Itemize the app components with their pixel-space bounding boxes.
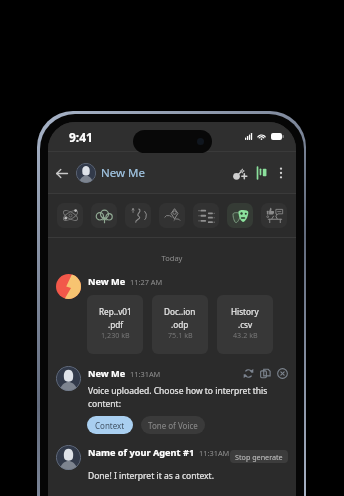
button[interactable]: Context bbox=[87, 416, 133, 434]
staticText: .pdf bbox=[108, 319, 124, 330]
staticText: History bbox=[231, 306, 259, 317]
button[interactable]: Tone of Voice bbox=[141, 416, 205, 434]
staticText: New Me bbox=[101, 165, 145, 181]
button[interactable]: Record bbox=[159, 203, 185, 228]
button[interactable]: More options bbox=[272, 164, 290, 182]
button[interactable]: Transcript bbox=[193, 203, 219, 228]
staticText: 11:31AM bbox=[199, 448, 230, 458]
button[interactable]: New Me bbox=[76, 163, 145, 183]
staticText: New Me bbox=[88, 275, 126, 288]
button[interactable]: Doc..ion bbox=[152, 295, 208, 354]
staticText: Done! I interpret it as a context. bbox=[88, 470, 214, 482]
staticText: Rep..v01 bbox=[99, 306, 132, 317]
button[interactable]: Voice wave bbox=[125, 203, 151, 228]
button[interactable]: Rep..v01 bbox=[87, 295, 143, 354]
button[interactable]: Regenerate bbox=[242, 367, 255, 380]
button[interactable]: Science bbox=[57, 203, 83, 228]
button[interactable]: Upload bbox=[91, 203, 117, 228]
staticText: Tone of Voice bbox=[148, 420, 198, 431]
button[interactable]: History bbox=[217, 295, 273, 354]
staticText: Today bbox=[48, 253, 296, 263]
staticText: 75.1 kB bbox=[168, 330, 193, 340]
button[interactable]: Stop generate bbox=[230, 450, 288, 463]
button[interactable]: Toggle panel bbox=[251, 163, 271, 183]
button[interactable]: Dismiss bbox=[276, 367, 289, 380]
staticText: Context bbox=[95, 420, 125, 431]
staticText: New Me bbox=[88, 367, 126, 380]
button[interactable]: Back bbox=[51, 162, 73, 184]
staticText: Stop generate bbox=[235, 452, 283, 462]
staticText: 1,230 kB bbox=[101, 330, 130, 340]
staticText: Doc..ion bbox=[164, 306, 196, 317]
button[interactable]: Add with magic wand bbox=[226, 163, 246, 183]
staticText: Name of your Agent #1 bbox=[88, 446, 195, 459]
button[interactable]: Feedback bbox=[261, 203, 287, 228]
button[interactable]: Copy bbox=[259, 367, 272, 380]
staticText: .csv bbox=[238, 319, 253, 330]
staticText: 9:41 bbox=[69, 129, 93, 145]
staticText: Voice uploaded. Choose how to interpret … bbox=[88, 385, 272, 409]
staticText: 43.2 kB bbox=[233, 330, 258, 340]
staticText: 11:27 AM bbox=[130, 277, 163, 287]
staticText: 11:31AM bbox=[130, 369, 161, 379]
staticText: .odp bbox=[171, 319, 189, 330]
button[interactable]: Tone of voice bbox=[227, 203, 253, 228]
